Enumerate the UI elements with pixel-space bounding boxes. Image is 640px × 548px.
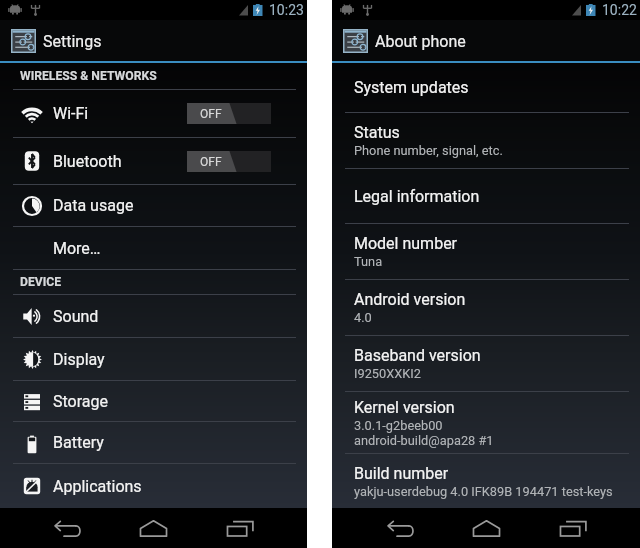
staticText: yakju-userdebug 4.0 IFK89B 194471 test-k… bbox=[354, 484, 613, 499]
button[interactable]: Status bbox=[332, 113, 640, 168]
button[interactable]: Sound bbox=[0, 295, 307, 337]
staticText: Build number bbox=[354, 464, 449, 483]
staticText: WIRELESS & NETWORKS bbox=[20, 69, 157, 83]
staticText: Baseband version bbox=[354, 346, 481, 365]
button[interactable]: Applications bbox=[0, 464, 307, 508]
staticText: Tuna bbox=[354, 254, 383, 269]
staticText: System updates bbox=[354, 78, 469, 97]
staticText: Model number bbox=[354, 234, 458, 253]
staticText: Sound bbox=[53, 307, 99, 326]
staticText: OFF bbox=[200, 155, 222, 169]
staticText: Applications bbox=[53, 477, 142, 496]
button[interactable]: Legal information bbox=[332, 169, 640, 223]
button[interactable]: Android version bbox=[332, 280, 640, 335]
button[interactable]: System updates bbox=[332, 63, 640, 112]
button[interactable]: OFF bbox=[187, 103, 271, 124]
button[interactable]: Home bbox=[110, 508, 197, 548]
button[interactable]: Build number bbox=[332, 454, 640, 508]
button[interactable]: OFF bbox=[187, 151, 271, 172]
button[interactable]: Recent apps bbox=[530, 508, 617, 548]
staticText: Bluetooth bbox=[53, 152, 122, 171]
staticText: Phone number, signal, etc. bbox=[354, 143, 503, 158]
staticText: DEVICE bbox=[20, 275, 62, 289]
staticText: 4.0 bbox=[354, 310, 372, 325]
staticText: Status bbox=[354, 123, 400, 142]
button[interactable]: Data usage bbox=[0, 185, 307, 226]
staticText: Display bbox=[53, 350, 105, 369]
staticText: More… bbox=[53, 239, 101, 258]
button[interactable]: Back bbox=[23, 508, 110, 548]
staticText: Wi-Fi bbox=[53, 104, 89, 123]
staticText: 10:22 bbox=[602, 2, 637, 18]
button[interactable]: Wi-Fi bbox=[0, 90, 307, 137]
button[interactable]: Baseband version bbox=[332, 336, 640, 391]
staticText: Legal information bbox=[354, 187, 480, 206]
button[interactable]: More… bbox=[0, 227, 307, 269]
button[interactable]: Storage bbox=[0, 381, 307, 421]
staticText: I9250XXKI2 bbox=[354, 366, 421, 381]
button[interactable]: Battery bbox=[0, 422, 307, 463]
staticText: 10:23 bbox=[269, 2, 304, 18]
button[interactable]: Home bbox=[443, 508, 530, 548]
staticText: Android version bbox=[354, 290, 466, 309]
button[interactable]: Display bbox=[0, 338, 307, 380]
staticText: OFF bbox=[200, 107, 222, 121]
button[interactable]: Model number bbox=[332, 224, 640, 279]
button[interactable]: Bluetooth bbox=[0, 138, 307, 184]
staticText: Battery bbox=[53, 433, 104, 452]
staticText: Kernel version bbox=[354, 398, 455, 417]
staticText: Storage bbox=[53, 392, 108, 411]
button[interactable]: Kernel version bbox=[332, 392, 640, 453]
staticText: Data usage bbox=[53, 196, 134, 215]
staticText: 3.0.1-g2beeb00 android-build@apa28 #1 bbox=[354, 418, 494, 448]
button[interactable]: Back bbox=[356, 508, 443, 548]
staticText: About phone bbox=[375, 32, 466, 51]
staticText: Settings bbox=[43, 32, 102, 51]
button[interactable]: Recent apps bbox=[197, 508, 284, 548]
